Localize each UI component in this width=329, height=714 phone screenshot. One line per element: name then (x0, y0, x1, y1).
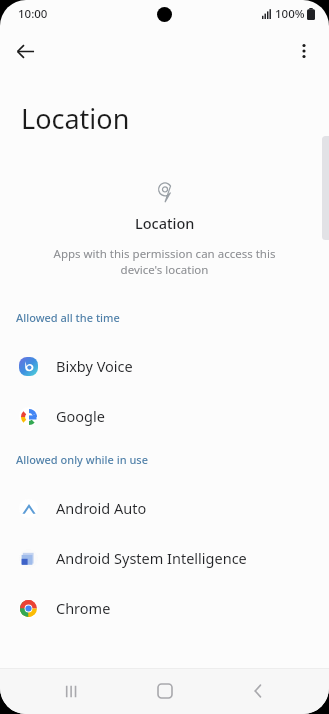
staticText: Location (135, 213, 195, 233)
staticText: Android System Intelligence (56, 548, 247, 568)
staticText: Chrome (56, 598, 111, 618)
button[interactable]: Back (235, 668, 281, 714)
staticText: Google (56, 406, 105, 426)
staticText: Allowed all the time (16, 310, 120, 325)
button[interactable]: Recents (48, 668, 94, 714)
button[interactable]: Google (0, 391, 329, 441)
button[interactable]: Android System Intelligence (0, 533, 329, 583)
staticText: 10:00 (18, 6, 48, 22)
button[interactable]: Back (6, 32, 44, 70)
button[interactable]: Bixby Voice (0, 341, 329, 391)
staticText: Allowed only while in use (16, 452, 148, 467)
staticText: Bixby Voice (56, 356, 133, 376)
button[interactable]: Android Auto (0, 483, 329, 533)
button[interactable]: Chrome (0, 583, 329, 633)
staticText: Apps with this permission can access thi… (38, 246, 291, 278)
staticText: 100% (275, 6, 305, 22)
staticText: Android Auto (56, 498, 147, 518)
button[interactable]: Home (142, 668, 188, 714)
staticText: Location (21, 100, 130, 137)
button[interactable]: More options (285, 32, 323, 70)
